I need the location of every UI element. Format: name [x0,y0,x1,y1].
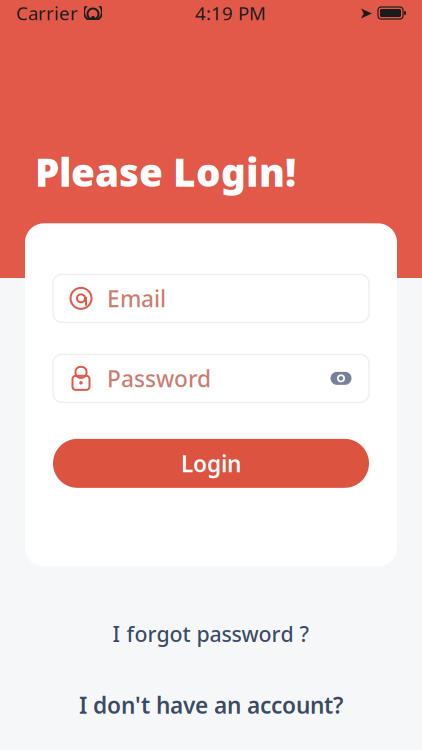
staticText: Carrier [16,1,78,25]
button[interactable]: I forgot password ? [88,612,333,656]
button[interactable]: I don't have an account? [55,682,367,728]
staticText: ➤ [359,4,372,22]
staticText: I don't have an account? [79,690,343,720]
staticText: Password [107,363,211,393]
staticText: Email [107,283,166,313]
staticText: Login [181,448,241,478]
staticText: 4:19 PM [195,1,266,25]
button[interactable]: Login [53,435,369,491]
staticText: Please Login! [35,146,296,197]
staticText: I forgot password ? [112,620,309,648]
